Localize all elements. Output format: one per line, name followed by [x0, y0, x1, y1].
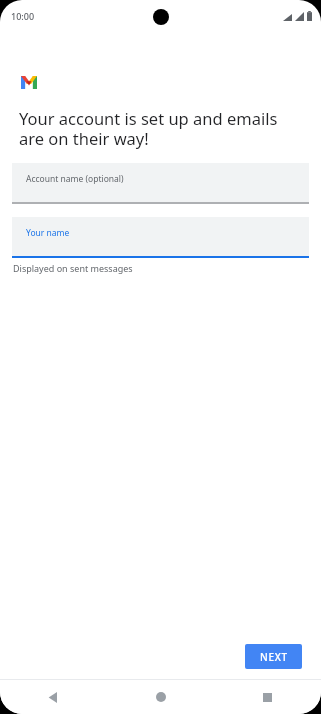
button[interactable]: Recent apps: [214, 680, 321, 714]
staticText: NEXT: [260, 650, 288, 664]
button[interactable]: Home: [107, 680, 214, 714]
staticText: Your account is set up and emails are on…: [19, 107, 278, 150]
staticText: Account name (optional): [26, 173, 124, 185]
button[interactable]: NEXT: [245, 644, 302, 669]
staticText: Your name: [26, 227, 70, 239]
staticText: 10:00: [11, 10, 35, 22]
button[interactable]: Account name (optional): [12, 163, 309, 204]
button[interactable]: Back: [0, 680, 107, 714]
button[interactable]: Your name: [12, 217, 309, 258]
staticText: Displayed on sent messages: [13, 262, 133, 274]
